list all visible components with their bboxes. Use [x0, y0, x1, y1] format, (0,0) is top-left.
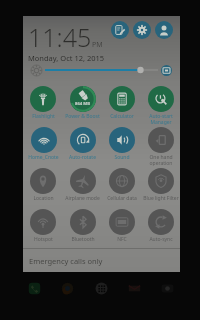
- button[interactable]: Calculator: [102, 86, 141, 127]
- button[interactable]: NFC: [102, 209, 141, 250]
- staticText: Sound: [114, 154, 130, 161]
- staticText: Location: [33, 195, 54, 202]
- staticText: Flashlight: [32, 113, 55, 120]
- button[interactable]: Hotspot: [23, 209, 63, 250]
- button[interactable]: Blue light Filter: [141, 168, 180, 209]
- staticText: Auto-start Manager: [149, 113, 173, 126]
- staticText: Calculator: [110, 113, 134, 120]
- button[interactable]: Settings: [133, 21, 151, 39]
- staticText: 864 MB: [75, 101, 91, 107]
- button[interactable]: 864 MB: [63, 86, 102, 127]
- staticText: 11:45: [28, 20, 92, 54]
- button[interactable]: Apps: [95, 282, 108, 295]
- staticText: Cellular data: [107, 195, 137, 202]
- staticText: Blue light Filter: [143, 195, 179, 202]
- staticText: Home_Cnote: [28, 154, 59, 161]
- button[interactable]: One hand operation: [141, 127, 180, 168]
- button[interactable]: Gmail: [128, 282, 141, 295]
- button[interactable]: Bluetooth: [63, 209, 102, 250]
- button[interactable]: Phone: [28, 282, 41, 295]
- button[interactable]: Chrome: [61, 282, 74, 295]
- staticText: Monday, Oct 12, 2015: [28, 53, 105, 63]
- staticText: Bluetooth: [71, 236, 95, 243]
- button[interactable]: Auto-start Manager: [141, 86, 180, 127]
- staticText: Auto-sync: [149, 236, 173, 243]
- button[interactable]: Auto-rotate: [63, 127, 102, 168]
- button[interactable]: Location: [23, 168, 63, 209]
- button[interactable]: Camera: [161, 282, 174, 295]
- button[interactable]: Edit quick settings: [111, 21, 129, 39]
- button[interactable]: Airplane mode: [63, 168, 102, 209]
- button[interactable]: User profile: [155, 21, 173, 39]
- staticText: Emergency calls only: [29, 256, 103, 266]
- button[interactable]: Auto brightness: [31, 65, 42, 76]
- staticText: One hand operation: [149, 154, 173, 167]
- button[interactable]: [45, 65, 158, 75]
- staticText: Power & Boost: [65, 113, 100, 120]
- button[interactable]: Screen mode: [161, 65, 172, 76]
- button[interactable]: Sound: [102, 127, 141, 168]
- button[interactable]: Cellular data: [102, 168, 141, 209]
- button[interactable]: Home_Cnote: [23, 127, 63, 168]
- staticText: PM: [92, 40, 103, 50]
- button[interactable]: Auto-sync: [141, 209, 180, 250]
- staticText: Hotspot: [34, 236, 53, 243]
- staticText: Airplane mode: [65, 195, 100, 202]
- button[interactable]: Flashlight: [23, 86, 63, 127]
- staticText: NFC: [117, 236, 127, 243]
- staticText: Auto-rotate: [69, 154, 96, 161]
